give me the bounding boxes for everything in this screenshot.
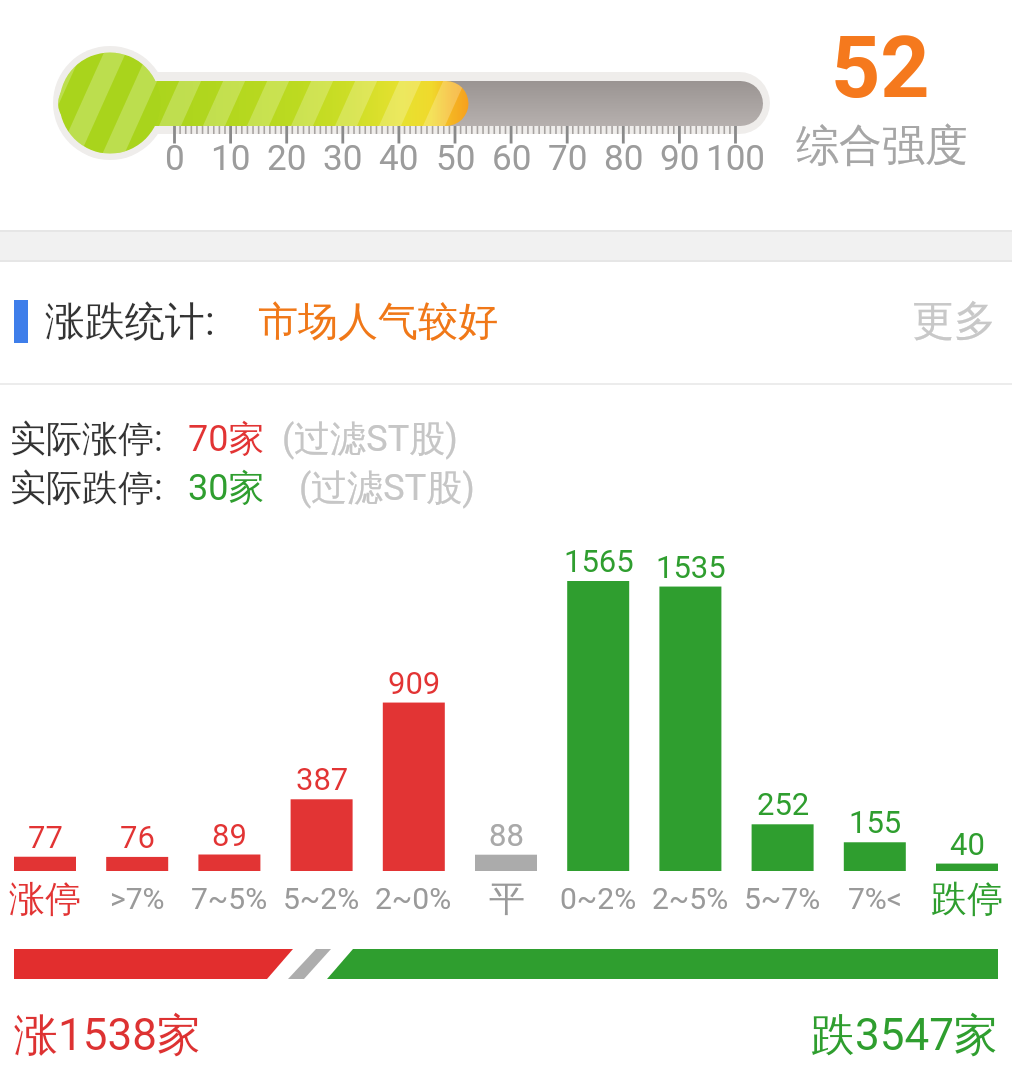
staticText: 1565 — [564, 543, 634, 579]
staticText: 跌停 — [931, 876, 1003, 921]
staticText: 跌3547家 — [811, 1008, 998, 1063]
staticText: 100 — [706, 138, 766, 179]
staticText: 387 — [296, 761, 349, 797]
staticText: 20 — [267, 138, 307, 179]
staticText: 0 — [165, 138, 185, 179]
staticText: (过滤ST股) — [282, 416, 458, 461]
staticText: 52 — [831, 17, 930, 118]
staticText: 7%< — [848, 881, 903, 916]
staticText: 综合强度 — [796, 119, 968, 173]
staticText: 60 — [492, 138, 532, 179]
staticText: 2~0% — [375, 881, 452, 916]
staticText: 90 — [660, 138, 700, 179]
staticText: 80 — [604, 138, 644, 179]
staticText: 30 — [323, 138, 363, 179]
staticText: 涨跌统计: — [45, 296, 215, 346]
staticText: 涨1538家 — [14, 1008, 201, 1063]
staticText: 909 — [388, 665, 441, 701]
staticText: 252 — [757, 786, 810, 822]
staticText: 77 — [28, 819, 63, 855]
staticText: (过滤ST股) — [299, 465, 475, 510]
staticText: 涨停 — [9, 876, 81, 921]
staticText: 7~5% — [191, 881, 268, 916]
staticText: 76 — [120, 819, 155, 855]
staticText: 0~2% — [560, 881, 637, 916]
staticText: 市场人气较好 — [258, 296, 498, 346]
staticText: 155 — [849, 804, 902, 840]
staticText: 88 — [489, 817, 524, 853]
staticText: 70家 — [188, 416, 265, 461]
staticText: 30家 — [188, 465, 265, 510]
staticText: 实际涨停: — [10, 416, 163, 461]
staticText: 更多 — [912, 295, 996, 348]
staticText: 40 — [379, 138, 419, 179]
staticText: 5~7% — [744, 881, 821, 916]
staticText: 5~2% — [283, 881, 360, 916]
staticText: 平 — [489, 876, 525, 921]
staticText: 10 — [211, 138, 251, 179]
staticText: 89 — [212, 817, 247, 853]
staticText: 实际跌停: — [10, 465, 163, 510]
staticText: 40 — [950, 826, 985, 862]
staticText: 50 — [436, 138, 476, 179]
staticText: 1535 — [656, 549, 726, 585]
staticText: 70 — [548, 138, 588, 179]
staticText: 2~5% — [652, 881, 729, 916]
staticText: >7% — [110, 881, 165, 916]
button[interactable]: 更多 — [786, 279, 996, 363]
